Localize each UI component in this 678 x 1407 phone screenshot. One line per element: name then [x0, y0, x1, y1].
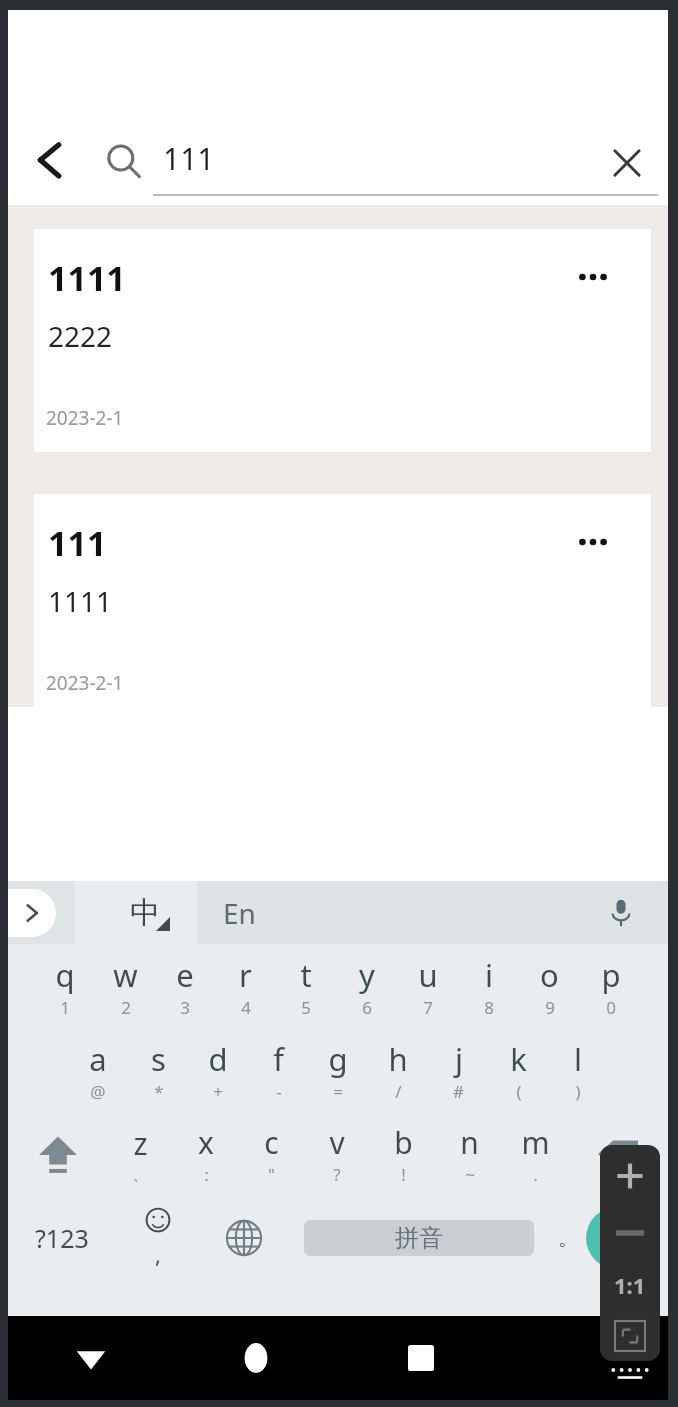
button[interactable]: Enter	[586, 1207, 648, 1269]
staticText: i	[485, 954, 493, 996]
button[interactable]: ,	[116, 1196, 200, 1280]
button[interactable]: 111	[34, 494, 651, 707]
button[interactable]: n	[436, 1112, 502, 1196]
staticText: 6	[362, 996, 372, 1019]
button[interactable]: Back	[16, 126, 84, 194]
button[interactable]: o	[519, 944, 580, 1028]
button[interactable]: w	[95, 944, 155, 1028]
button[interactable]: p	[580, 944, 641, 1028]
button[interactable]: v	[304, 1112, 370, 1196]
staticText: p	[601, 954, 621, 996]
staticText: v	[329, 1122, 345, 1163]
staticText: n	[460, 1122, 479, 1163]
staticText: 2023-2-1	[46, 670, 124, 696]
button[interactable]: j	[428, 1028, 488, 1112]
staticText: 7	[423, 996, 433, 1019]
staticText: *	[154, 1080, 164, 1103]
button[interactable]: u	[397, 944, 458, 1028]
button[interactable]: More options	[565, 249, 621, 305]
staticText: 。	[558, 1226, 578, 1251]
button[interactable]: m	[502, 1112, 568, 1196]
button[interactable]: 。	[538, 1196, 598, 1280]
button[interactable]: a	[68, 1028, 128, 1112]
button[interactable]: l	[548, 1028, 608, 1112]
staticText: 1:1	[614, 1270, 646, 1300]
staticText: 8	[484, 996, 494, 1019]
staticText: m	[521, 1122, 550, 1163]
staticText: ?123	[35, 1221, 89, 1255]
button[interactable]: r	[215, 944, 275, 1028]
staticText: r	[239, 954, 252, 996]
staticText: 1111	[48, 582, 113, 620]
staticText: d	[208, 1038, 228, 1080]
button[interactable]: 中	[105, 881, 185, 944]
button[interactable]: k	[488, 1028, 548, 1112]
button[interactable]: Shift	[8, 1112, 108, 1196]
button[interactable]: b	[370, 1112, 436, 1196]
button[interactable]: i	[458, 944, 519, 1028]
staticText: w	[113, 954, 138, 996]
staticText: g	[328, 1038, 348, 1080]
staticText: y	[359, 954, 375, 996]
staticText: 2	[121, 996, 131, 1019]
button[interactable]: 1:1	[600, 1259, 660, 1311]
button[interactable]: Fullscreen	[600, 1311, 660, 1361]
staticText: (	[516, 1080, 522, 1103]
staticText: :	[204, 1163, 209, 1186]
staticText: En	[223, 894, 256, 932]
button[interactable]: Voice input	[596, 888, 646, 938]
staticText: 2222	[48, 317, 113, 355]
staticText: e	[176, 954, 194, 996]
button[interactable]: En	[223, 881, 313, 944]
staticText: 1111	[48, 255, 126, 301]
button[interactable]: q	[35, 944, 95, 1028]
button[interactable]: Clear	[596, 132, 658, 194]
button[interactable]: s	[128, 1028, 188, 1112]
button[interactable]: f	[248, 1028, 308, 1112]
staticText: -	[276, 1080, 282, 1103]
button[interactable]: 拼音	[304, 1220, 534, 1256]
button[interactable]: e	[155, 944, 215, 1028]
staticText: 3	[180, 996, 190, 1019]
button[interactable]: Backspace	[568, 1112, 668, 1196]
button[interactable]: Zoom out	[600, 1207, 660, 1259]
staticText: 5	[301, 996, 311, 1019]
button[interactable]: x	[173, 1112, 238, 1196]
button[interactable]: More options	[565, 514, 621, 570]
button[interactable]: z	[108, 1112, 173, 1196]
staticText: #	[453, 1080, 464, 1103]
staticText: ~	[465, 1163, 475, 1186]
staticText: q	[55, 954, 75, 996]
button[interactable]: y	[336, 944, 397, 1028]
button[interactable]: Recents	[338, 1316, 503, 1400]
button[interactable]: g	[308, 1028, 368, 1112]
button[interactable]: Back	[8, 1316, 173, 1400]
staticText: "	[268, 1163, 275, 1186]
staticText: 0	[606, 996, 616, 1019]
button[interactable]: Change language	[200, 1196, 288, 1280]
button[interactable]: d	[188, 1028, 248, 1112]
button[interactable]: 1111	[34, 229, 651, 452]
staticText: s	[151, 1038, 166, 1080]
button[interactable]: Home	[173, 1316, 338, 1400]
button[interactable]: h	[368, 1028, 428, 1112]
button[interactable]: t	[275, 944, 336, 1028]
button[interactable]: c	[238, 1112, 304, 1196]
staticText: 111	[163, 138, 215, 179]
staticText: t	[300, 954, 312, 996]
staticText: .	[533, 1163, 538, 1186]
staticText: )	[575, 1080, 581, 1103]
button[interactable]: ?123	[8, 1196, 116, 1280]
staticText: 4	[241, 996, 251, 1019]
button[interactable]: Zoom in	[600, 1145, 660, 1207]
staticText: o	[540, 954, 559, 996]
staticText: b	[394, 1122, 413, 1163]
button[interactable]: Expand toolbar	[8, 889, 56, 937]
staticText: l	[574, 1038, 582, 1080]
staticText: @	[90, 1080, 106, 1103]
staticText: 2023-2-1	[46, 405, 124, 431]
staticText: 111	[48, 520, 107, 566]
staticText: a	[89, 1038, 107, 1080]
staticText: 9	[545, 996, 555, 1019]
staticText: c	[264, 1122, 279, 1163]
